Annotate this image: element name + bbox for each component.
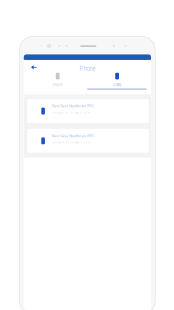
staticText: Best Case Healthcare PPO bbox=[52, 134, 93, 138]
staticText: Updated on 10 March 2019 bbox=[52, 141, 90, 144]
staticText: Card bbox=[113, 83, 121, 87]
staticText: Updated on 10 March 2019 bbox=[52, 111, 90, 114]
button[interactable]: Back bbox=[31, 65, 37, 70]
button[interactable]: Card bbox=[87, 72, 147, 88]
staticText: Phone bbox=[53, 83, 63, 87]
button[interactable]: Best Case Healthcare PPO bbox=[27, 129, 149, 153]
staticText: Phone bbox=[79, 65, 95, 72]
staticText: Best Case Healthcare PPO bbox=[52, 104, 93, 108]
button[interactable]: Best Case Healthcare PPO bbox=[27, 99, 149, 123]
button[interactable]: Phone bbox=[28, 72, 87, 88]
